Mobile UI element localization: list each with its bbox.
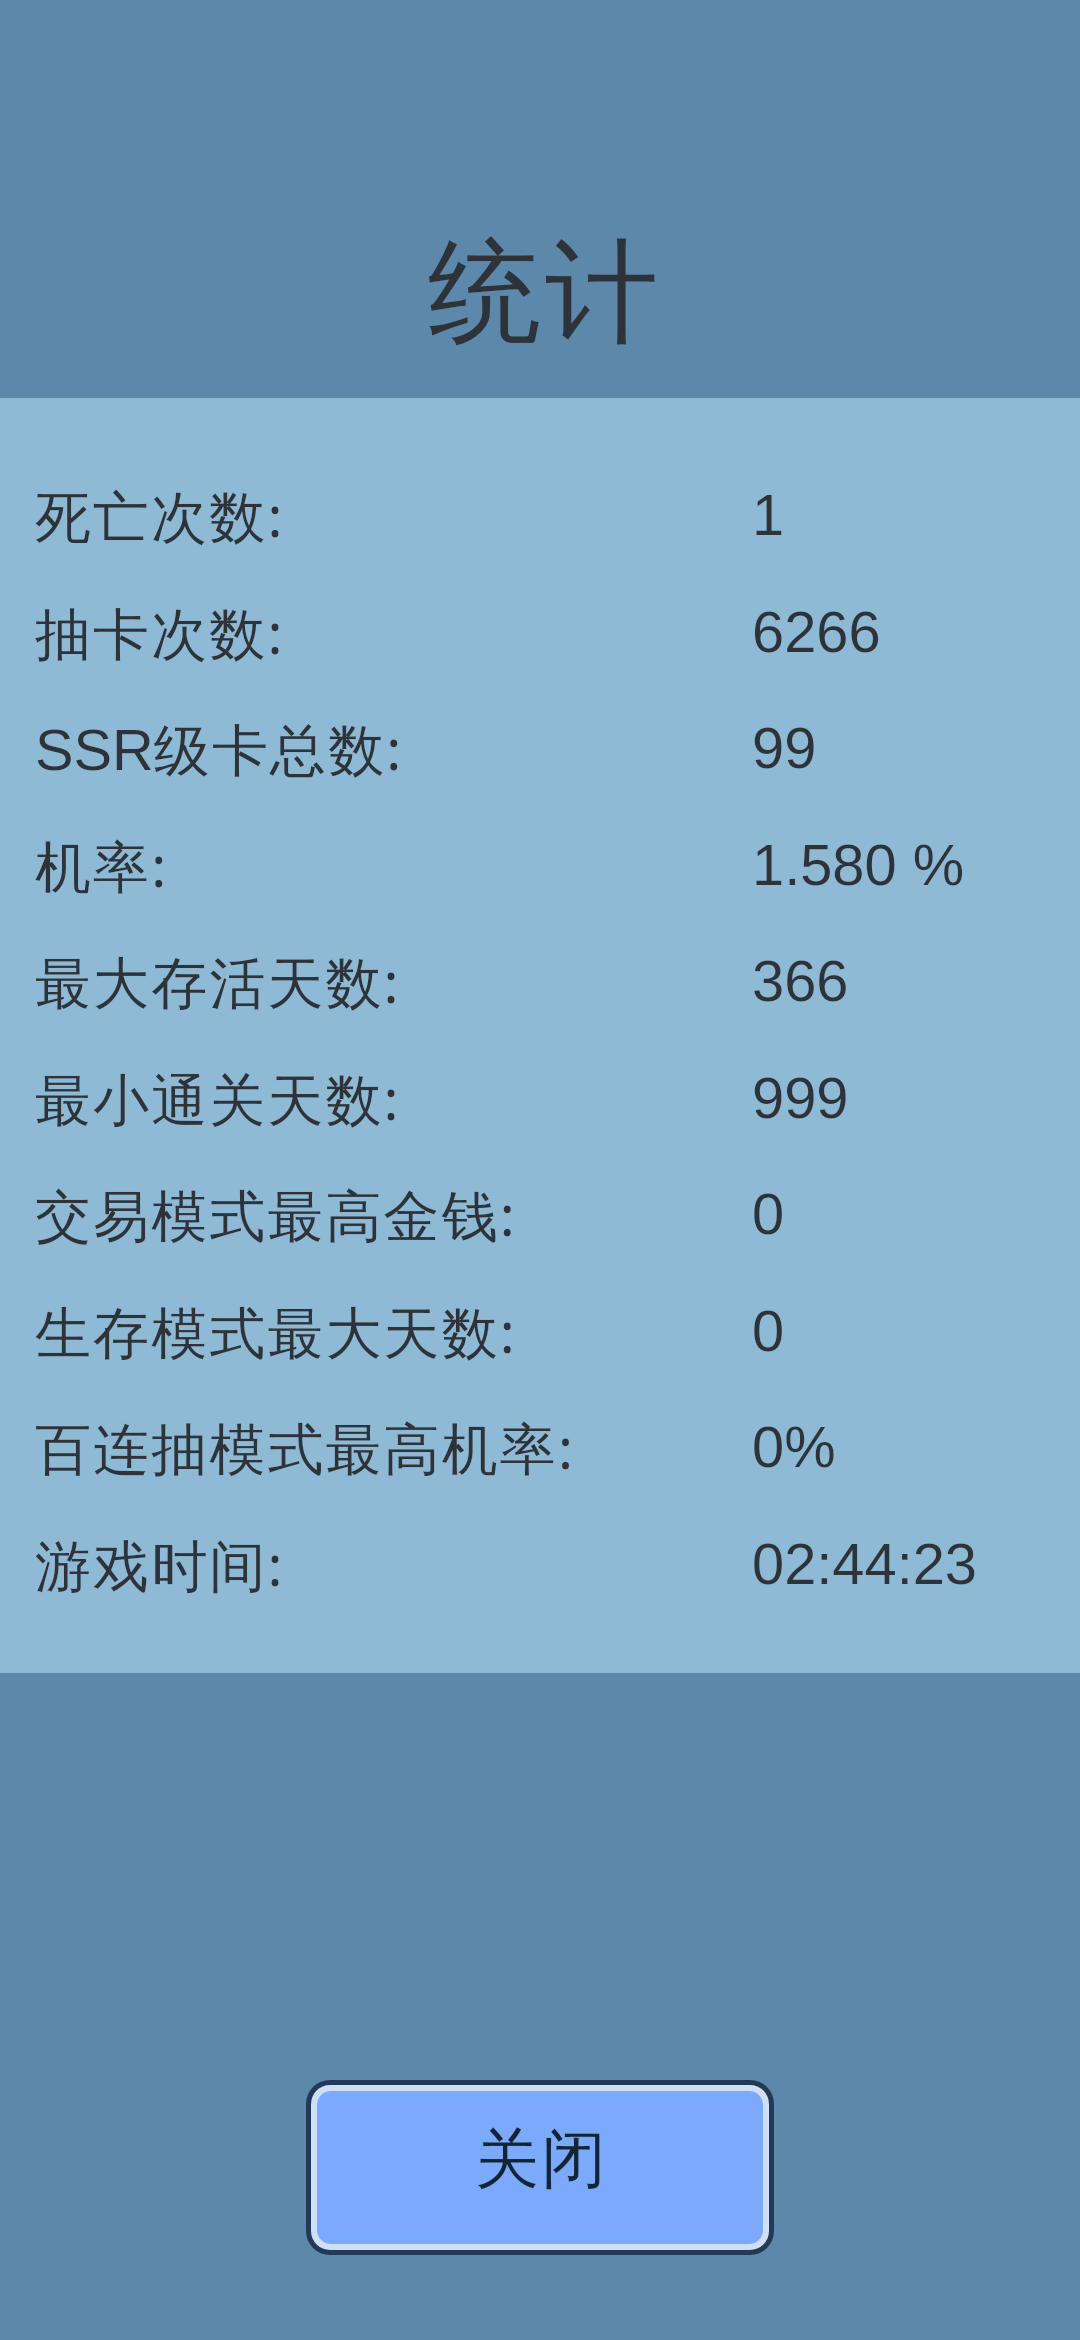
staticText: 关闭	[475, 2119, 608, 2200]
staticText: 1.580 %	[752, 833, 965, 898]
staticText: 百连抽模式最高机率:	[35, 1409, 576, 1485]
staticText: 0	[752, 1299, 785, 1364]
staticText: 最小通关天数:	[35, 1060, 401, 1136]
staticText: 1	[752, 483, 785, 548]
staticText: 6266	[752, 600, 881, 665]
staticText: 99	[752, 716, 817, 781]
staticText: 0%	[752, 1415, 836, 1480]
staticText: 366	[752, 949, 849, 1014]
staticText: SSR级卡总数:	[35, 710, 404, 786]
staticText: 999	[752, 1066, 849, 1131]
staticText: 02:44:23	[752, 1532, 977, 1597]
staticText: 统计	[428, 222, 663, 364]
staticText: 游戏时间:	[35, 1526, 285, 1602]
staticText: 最大存活天数:	[35, 943, 401, 1019]
staticText: 生存模式最大天数:	[35, 1293, 517, 1369]
staticText: 抽卡次数:	[35, 594, 285, 670]
staticText: 死亡次数:	[35, 477, 285, 553]
staticText: 0	[752, 1182, 785, 1247]
staticText: 交易模式最高金钱:	[35, 1176, 517, 1252]
button[interactable]: 关闭	[317, 2091, 763, 2244]
staticText: 机率:	[35, 827, 169, 903]
